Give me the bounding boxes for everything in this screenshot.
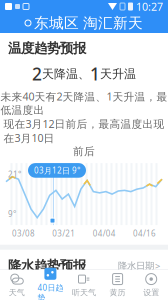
staticText: 设置 — [143, 288, 159, 297]
staticText: 听天气 — [72, 288, 96, 297]
staticText: 东城区 淘汇新天 — [34, 14, 143, 32]
staticText: 温度趋势预报 — [8, 40, 86, 56]
staticText: 黄历 — [110, 288, 126, 297]
staticText: 天降水 — [71, 285, 107, 300]
staticText: 2 — [32, 62, 42, 85]
button[interactable]: 听天气 — [67, 270, 101, 300]
staticText: 降水趋势预报 — [8, 258, 86, 274]
staticText: 天升温 — [100, 66, 136, 81]
button[interactable]: 天气 — [0, 270, 34, 300]
staticText: 天气 — [9, 288, 25, 297]
staticText: 04/04 — [93, 228, 116, 239]
staticText: 1 — [90, 62, 100, 85]
staticText: 天降温、 — [42, 66, 90, 81]
staticText: 40日趋势 — [37, 282, 63, 300]
button[interactable]: 设置 — [134, 270, 168, 300]
staticText: 9° — [8, 208, 16, 219]
button[interactable]: 东城区 淘汇新天 — [0, 13, 168, 33]
staticText: 04/16 — [133, 228, 156, 239]
button[interactable]: 40日趋势 — [34, 270, 67, 300]
staticText: 现在3月12日前后，最高温度出现在3月10日 — [3, 117, 164, 145]
staticText: 10:27 — [136, 0, 163, 14]
staticText: 03/21 — [52, 228, 75, 239]
staticText: 未来40天有2天降温、1天升温，最低温度出 — [0, 89, 167, 117]
staticText: 1 — [61, 281, 71, 300]
staticText: 21° — [8, 169, 21, 180]
staticText: 降水日期 — [118, 260, 154, 272]
staticText: > — [155, 260, 160, 272]
staticText: 前后 — [73, 145, 95, 158]
staticText: 03月12日 9° — [34, 165, 80, 176]
staticText: 03/08 — [12, 228, 35, 239]
button[interactable]: 黄历 — [101, 270, 134, 300]
button[interactable]: 降水日期 — [118, 260, 160, 272]
